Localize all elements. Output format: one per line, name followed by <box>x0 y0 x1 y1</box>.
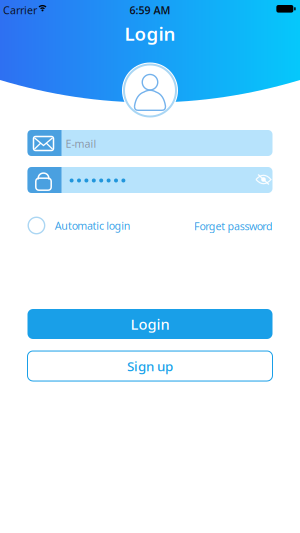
button[interactable] <box>27 167 272 193</box>
staticText: Forget password <box>194 219 273 233</box>
staticText: Automatic login <box>55 218 131 233</box>
button[interactable]: Login <box>27 309 272 339</box>
staticText: Carrier <box>3 3 37 17</box>
staticText: E-mail <box>65 136 96 151</box>
button[interactable]: Automatic login <box>28 217 158 234</box>
staticText: Login <box>124 21 175 46</box>
button[interactable]: E-mail <box>27 130 272 156</box>
staticText: 6:59 AM <box>129 3 170 17</box>
staticText: Login <box>130 314 169 334</box>
staticText: Sign up <box>127 357 173 375</box>
button[interactable]: Forget password <box>163 219 273 233</box>
button[interactable]: Sign up <box>27 351 272 381</box>
